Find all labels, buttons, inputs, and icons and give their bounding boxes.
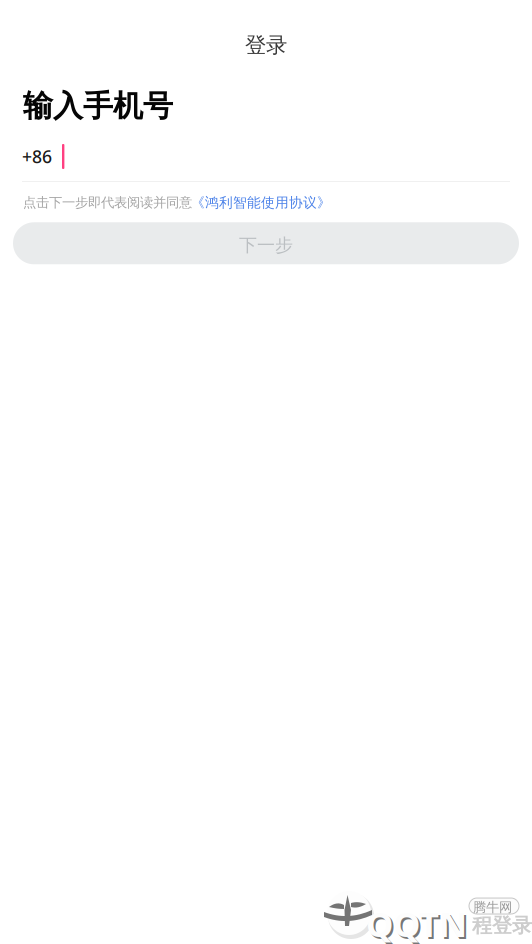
staticText: 登录 <box>245 32 287 58</box>
button[interactable]: 手机号输入框，国家代码 +86 <box>22 144 510 169</box>
staticText: 点击下一步即代表阅读并同意 <box>23 194 192 211</box>
staticText: 《鸿利智能使用协议》 <box>191 194 331 211</box>
staticText: 输入手机号 <box>23 87 173 125</box>
button[interactable]: 《鸿利智能使用协议》 <box>191 194 331 211</box>
button[interactable]: 下一步 <box>13 222 519 264</box>
staticText: +86 <box>22 144 52 168</box>
staticText: 下一步 <box>239 234 293 257</box>
